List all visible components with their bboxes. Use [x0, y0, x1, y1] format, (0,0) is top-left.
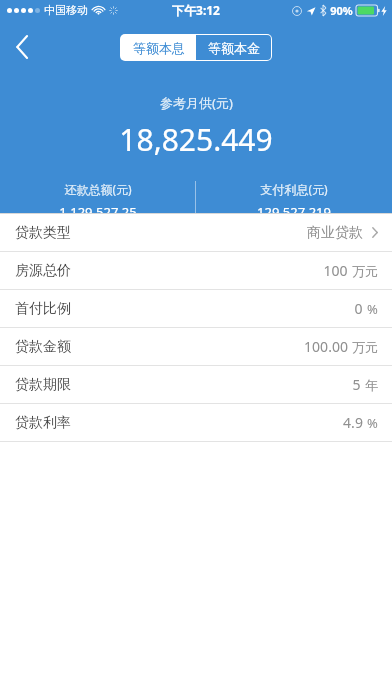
button[interactable]: 贷款金额 [0, 328, 392, 365]
staticText: 支付利息(元) [260, 181, 328, 197]
staticText: 万元 [352, 263, 378, 279]
staticText: 首付比例 [15, 300, 71, 318]
staticText: 下午3:12 [172, 2, 220, 18]
button[interactable]: 贷款利率 [0, 404, 392, 441]
staticText: 万元 [352, 339, 378, 355]
staticText: 90% [330, 3, 353, 18]
staticText: % [367, 414, 378, 432]
staticText: 4.9 [343, 413, 363, 432]
staticText: 贷款利率 [15, 414, 71, 432]
button[interactable]: 等额本金 [196, 35, 271, 60]
button[interactable]: 等额本息 [121, 35, 196, 60]
staticText: 参考月供(元) [160, 94, 233, 112]
staticText: 129,527.219 [257, 203, 331, 213]
staticText: 18,825.449 [119, 119, 273, 160]
staticText: % [367, 300, 378, 318]
staticText: 100 [323, 261, 348, 280]
staticText: 商业贷款 [307, 224, 363, 242]
staticText: 中国移动 [44, 3, 88, 17]
staticText: 贷款类型 [15, 224, 71, 242]
staticText: 贷款金额 [15, 338, 71, 356]
button[interactable]: 房源总价 [0, 252, 392, 289]
staticText: 100.00 [304, 337, 348, 356]
staticText: 贷款期限 [15, 376, 71, 394]
staticText: 等额本息 [133, 40, 185, 56]
staticText: 等额本金 [208, 40, 260, 56]
button[interactable]: 贷款类型 [0, 214, 392, 251]
staticText: 还款总额(元) [64, 181, 132, 197]
staticText: 房源总价 [15, 262, 71, 280]
staticText: 年 [365, 377, 378, 393]
staticText: 0 [354, 299, 363, 318]
button[interactable]: 首付比例 [0, 290, 392, 327]
button[interactable]: Back [0, 25, 44, 69]
staticText: 1,129,527.25 [59, 203, 137, 213]
staticText: 5 [352, 375, 361, 394]
button[interactable]: 贷款期限 [0, 366, 392, 403]
